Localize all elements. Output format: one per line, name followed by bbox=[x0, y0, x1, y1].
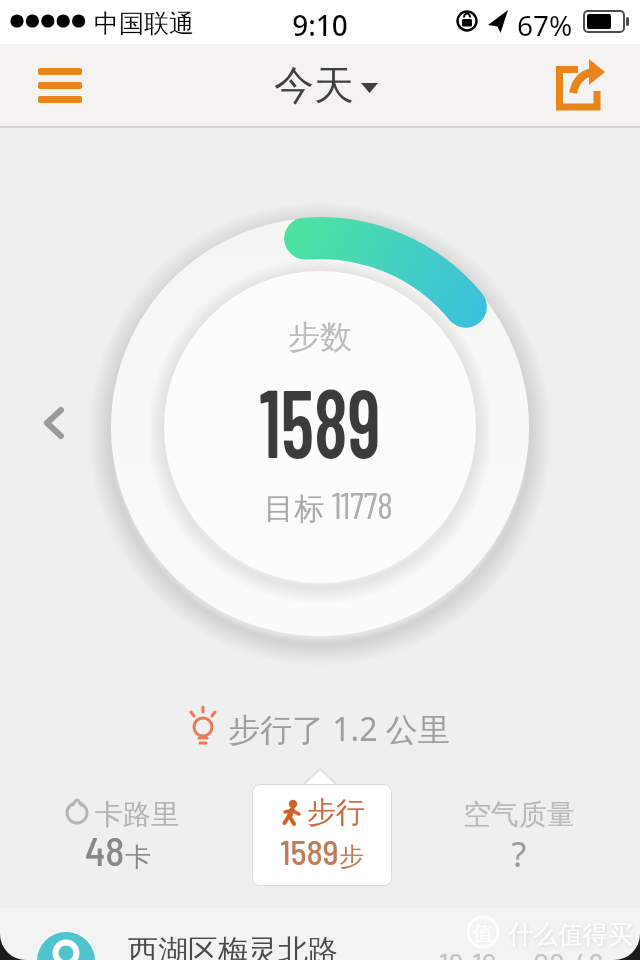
staticText: 11778 bbox=[332, 482, 393, 526]
staticText: 西湖区梅灵北路 bbox=[128, 932, 368, 960]
staticText: 步 bbox=[339, 841, 364, 872]
button[interactable]: 步行 bbox=[252, 784, 392, 886]
button[interactable] bbox=[28, 56, 92, 116]
button[interactable] bbox=[30, 395, 78, 451]
staticText: 目标 bbox=[264, 487, 332, 528]
staticText: 步行了 1.2 公里 bbox=[228, 707, 488, 751]
staticText: 空气质量 bbox=[459, 797, 579, 832]
staticText: 48 bbox=[85, 826, 125, 874]
staticText: 步行 bbox=[307, 794, 365, 831]
staticText: 今天 bbox=[274, 60, 354, 110]
staticText: 67% bbox=[517, 6, 587, 44]
staticText: 中国联通 bbox=[94, 8, 214, 39]
staticText: 1589 bbox=[280, 831, 339, 872]
staticText: 卡 bbox=[125, 841, 151, 874]
staticText: 卡路里 bbox=[95, 797, 195, 832]
staticText: 08:46 bbox=[533, 944, 613, 960]
staticText: 值 bbox=[466, 921, 500, 946]
staticText: ? bbox=[459, 831, 579, 877]
staticText: 9:10 bbox=[0, 6, 640, 44]
staticText: 1589 bbox=[64, 361, 576, 477]
staticText: 步数 bbox=[0, 317, 640, 357]
button[interactable] bbox=[546, 52, 616, 120]
button[interactable] bbox=[0, 908, 640, 960]
button[interactable]: 今天 bbox=[274, 60, 378, 110]
staticText: 什么值得买 bbox=[508, 919, 640, 950]
staticText: 19:19 bbox=[439, 944, 519, 960]
